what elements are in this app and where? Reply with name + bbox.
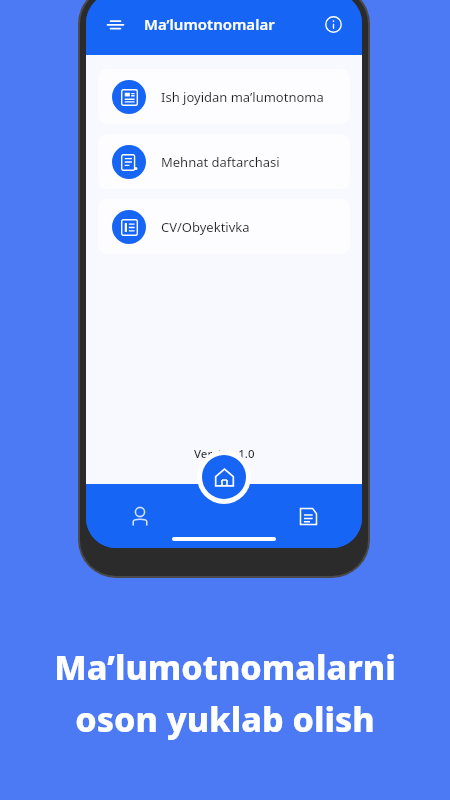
- staticText: Version 1.0: [194, 446, 255, 462]
- button[interactable]: Home: [197, 450, 251, 504]
- button[interactable]: Documents: [288, 496, 328, 536]
- staticText: oson yuklab olish: [75, 696, 375, 742]
- staticText: Ma’lumotnomalarni: [54, 644, 396, 690]
- button[interactable]: Menu: [100, 9, 130, 39]
- button[interactable]: Mehnat daftarchasi: [98, 134, 350, 189]
- staticText: Mehnat daftarchasi: [161, 153, 280, 171]
- button[interactable]: Ish joyidan ma’lumotnoma: [98, 69, 350, 124]
- staticText: Ish joyidan ma’lumotnoma: [161, 88, 324, 106]
- button[interactable]: CV/Obyektivka: [98, 199, 350, 254]
- button[interactable]: Profile: [120, 496, 160, 536]
- button[interactable]: Info: [318, 9, 348, 39]
- staticText: Ma’lumotnomalar: [144, 14, 275, 34]
- staticText: CV/Obyektivka: [161, 218, 250, 236]
